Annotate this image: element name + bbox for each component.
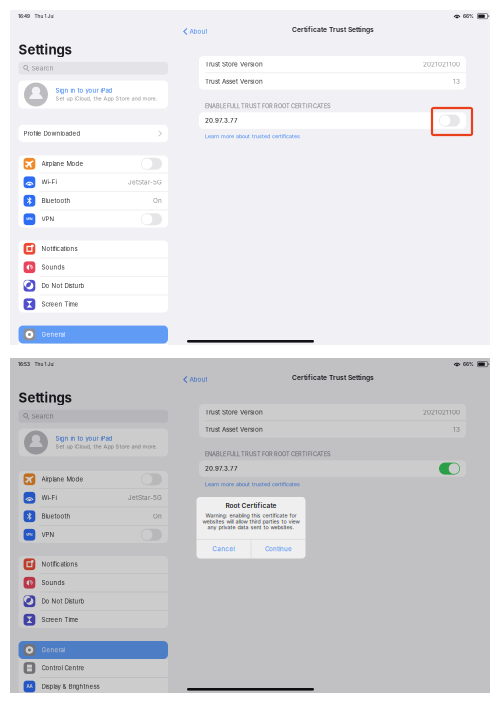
button[interactable]: Do Not Disturb — [18, 592, 168, 610]
staticText: Notifications — [42, 561, 78, 568]
button[interactable]: Search — [18, 62, 168, 75]
staticText: 66% — [463, 13, 474, 19]
staticText: General — [42, 646, 65, 653]
staticText: Airplane Mode — [42, 160, 84, 167]
staticText: Trust Store Version — [205, 60, 263, 68]
button[interactable]: Airplane Mode — [18, 155, 168, 173]
staticText: About — [189, 28, 207, 35]
staticText: AA — [26, 684, 32, 689]
staticText: Cancel — [212, 545, 235, 553]
button[interactable]: AA — [18, 362, 168, 380]
button[interactable]: Notifications — [18, 240, 168, 258]
button[interactable]: Sign in to your iPad — [18, 428, 168, 456]
staticText: Learn more about trusted certificates — [205, 481, 300, 487]
button[interactable]: Cancel — [196, 539, 251, 558]
staticText: ENABLE FULL TRUST FOR ROOT CERTIFICATES — [205, 451, 331, 458]
staticText: Set up iCloud, the App Store and more. — [55, 95, 157, 102]
staticText: On — [153, 512, 162, 520]
staticText: Settings — [18, 42, 71, 58]
button[interactable]: Learn more about trusted certificates — [205, 133, 325, 139]
button[interactable]: Bluetooth — [18, 507, 168, 525]
button[interactable]: Airplane Mode — [18, 470, 168, 488]
staticText: 13 — [453, 426, 460, 433]
staticText: Sign in to your iPad — [55, 435, 112, 442]
button[interactable]: About — [179, 373, 211, 386]
staticText: Continue — [265, 545, 292, 553]
staticText: Bluetooth — [42, 197, 71, 204]
staticText: Trust Store Version — [205, 408, 263, 416]
staticText: General — [42, 330, 65, 338]
button[interactable]: Sign in to your iPad — [18, 80, 168, 108]
staticText: 66% — [463, 361, 474, 367]
staticText: ENABLE FULL TRUST FOR ROOT CERTIFICATES — [205, 103, 331, 110]
button[interactable]: General — [18, 640, 168, 658]
button[interactable]: VPN — [18, 210, 168, 228]
staticText: VPN — [42, 531, 55, 538]
staticText: About — [189, 376, 207, 383]
staticText: Learn more about trusted certificates — [205, 133, 300, 139]
button[interactable]: Continue — [251, 539, 305, 558]
staticText: Display & Brightness — [42, 683, 100, 690]
staticText: VPN — [26, 533, 33, 537]
staticText: 13 — [453, 78, 460, 85]
button[interactable]: VPN — [18, 526, 168, 544]
staticText: Thu 1 Jul — [34, 14, 54, 19]
staticText: On — [153, 197, 162, 205]
staticText: Trust Asset Version — [205, 78, 263, 85]
staticText: Do Not Disturb — [42, 282, 85, 289]
staticText: JetStar-5G — [128, 494, 162, 502]
button[interactable]: General — [18, 641, 168, 659]
staticText: Airplane Mode — [42, 476, 84, 483]
button[interactable]: Control Centre — [18, 659, 168, 677]
button[interactable]: Wi-Fi — [18, 173, 168, 191]
staticText: Certificate Trust Settings — [292, 374, 374, 382]
button[interactable]: General — [18, 325, 168, 343]
button[interactable]: Control Centre — [18, 343, 168, 361]
button[interactable]: Wi-Fi — [18, 489, 168, 507]
staticText: Sounds — [42, 264, 65, 271]
staticText: General — [42, 646, 65, 654]
staticText: VPN — [42, 216, 55, 223]
staticText: 20.97.3.77 — [205, 465, 238, 472]
staticText: Warning: enabling this certificate for — [205, 512, 296, 519]
staticText: Do Not Disturb — [42, 598, 85, 605]
button[interactable]: Do Not Disturb — [18, 277, 168, 295]
staticText: Screen Time — [42, 301, 79, 308]
staticText: Profile Downloaded — [24, 130, 81, 137]
button[interactable]: Notifications — [18, 555, 168, 573]
staticText: Bluetooth — [42, 513, 71, 520]
staticText: 16:53 — [18, 362, 30, 367]
staticText: Sign in to your iPad — [55, 87, 112, 94]
staticText: any private data sent to websites. — [207, 524, 294, 531]
staticText: Notifications — [42, 245, 78, 252]
staticText: Thu 1 Jul — [34, 362, 54, 367]
staticText: Wi-Fi — [42, 494, 57, 501]
button[interactable]: Profile Downloaded — [18, 124, 168, 142]
button[interactable]: General — [18, 325, 168, 343]
button[interactable]: Screen Time — [18, 611, 168, 629]
button[interactable]: Sounds — [18, 258, 168, 276]
button[interactable]: AA — [18, 677, 168, 695]
button[interactable]: About — [179, 25, 211, 38]
staticText: Search — [32, 64, 54, 72]
staticText: General — [42, 331, 65, 338]
staticText: Control Centre — [42, 664, 85, 672]
staticText: 20.97.3.77 — [205, 117, 238, 124]
staticText: 2021021100 — [423, 60, 460, 68]
button[interactable]: Bluetooth — [18, 192, 168, 210]
staticText: Wi-Fi — [42, 179, 57, 186]
staticText: 16:49 — [18, 14, 30, 19]
button[interactable]: Screen Time — [18, 295, 168, 313]
button[interactable]: Learn more about trusted certificates — [205, 481, 325, 487]
staticText: Sounds — [42, 579, 65, 586]
button[interactable]: Search — [18, 410, 168, 423]
staticText: Set up iCloud, the App Store and more. — [55, 443, 157, 450]
staticText: VPN — [26, 217, 33, 221]
staticText: Root Certificate — [225, 502, 276, 510]
staticText: Search — [32, 412, 54, 420]
staticText: Certificate Trust Settings — [292, 26, 374, 34]
button[interactable]: Sounds — [18, 574, 168, 592]
staticText: Screen Time — [42, 616, 79, 623]
